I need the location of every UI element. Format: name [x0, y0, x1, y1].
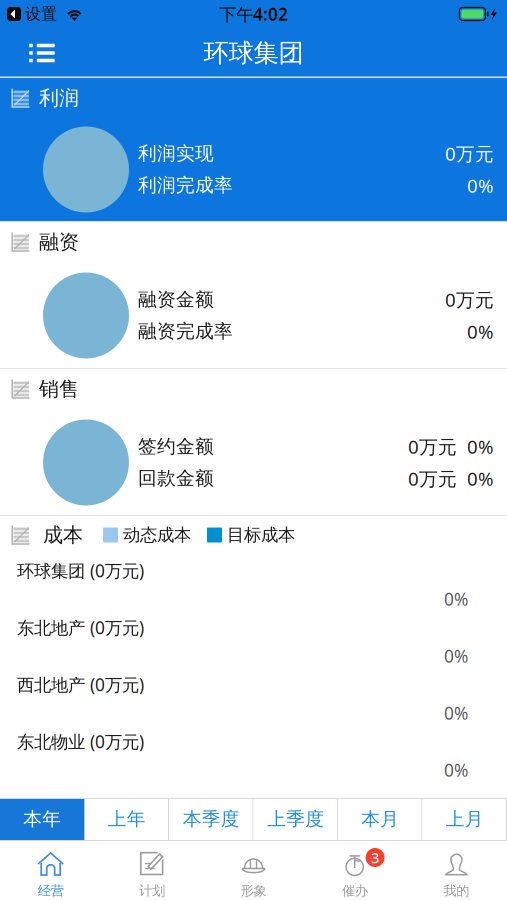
staticText: 目标成本	[227, 524, 295, 546]
button[interactable]: 本月	[338, 798, 422, 840]
button[interactable]: 上月	[422, 798, 507, 840]
staticText: 下午4:02	[219, 2, 288, 25]
button[interactable]: 经营	[0, 840, 101, 900]
button[interactable]: 计划	[101, 840, 203, 900]
staticText: 环球集团 (0万元)	[17, 559, 144, 582]
button[interactable]: 上季度	[253, 798, 338, 840]
button[interactable]: 本年	[0, 798, 84, 840]
button[interactable]: 形象	[203, 840, 304, 900]
staticText: 融资	[39, 230, 79, 254]
staticText: 西北地产 (0万元)	[17, 673, 144, 696]
staticText: 0万元	[445, 287, 494, 312]
staticText: 0%	[467, 319, 494, 344]
staticText: 融资金额	[138, 288, 214, 311]
staticText: 回款金额	[138, 467, 214, 490]
staticText: 签约金额	[138, 435, 214, 458]
staticText: 上月	[446, 807, 484, 830]
button[interactable]: 菜单	[0, 28, 84, 78]
staticText: 0%	[444, 758, 468, 781]
staticText: 动态成本	[123, 524, 191, 546]
staticText: 0%	[444, 644, 468, 667]
staticText: 0%	[444, 587, 468, 610]
staticText: 催办	[342, 883, 368, 899]
staticText: 我的	[443, 883, 469, 899]
staticText: 东北物业 (0万元)	[17, 730, 144, 753]
button[interactable]: 3	[304, 840, 406, 900]
staticText: 0万元	[445, 141, 494, 166]
staticText: 0%	[467, 173, 494, 198]
staticText: 计划	[139, 883, 165, 899]
staticText: 东北地产 (0万元)	[17, 616, 144, 639]
staticText: 0万元	[408, 466, 457, 491]
staticText: 0%	[444, 701, 468, 724]
staticText: 0%	[467, 434, 494, 459]
staticText: 环球集团	[203, 37, 303, 68]
staticText: 利润实现	[138, 142, 214, 165]
staticText: 上季度	[267, 807, 324, 830]
staticText: 利润	[39, 86, 79, 110]
staticText: 0万元	[408, 434, 457, 459]
staticText: 融资完成率	[138, 320, 233, 343]
staticText: 成本	[43, 523, 83, 547]
staticText: 本季度	[183, 807, 240, 830]
staticText: 销售	[39, 377, 79, 401]
staticText: 上年	[108, 807, 146, 830]
staticText: 3	[371, 848, 379, 867]
staticText: 本年	[23, 807, 61, 830]
button[interactable]: 上年	[84, 798, 169, 840]
staticText: 设置	[25, 4, 57, 24]
button[interactable]: 本季度	[169, 798, 253, 840]
staticText: 本月	[361, 807, 399, 830]
staticText: 0%	[467, 466, 494, 491]
button[interactable]: 我的	[406, 840, 507, 900]
staticText: 经营	[38, 883, 64, 899]
staticText: 形象	[240, 883, 266, 899]
staticText: 利润完成率	[138, 174, 233, 197]
